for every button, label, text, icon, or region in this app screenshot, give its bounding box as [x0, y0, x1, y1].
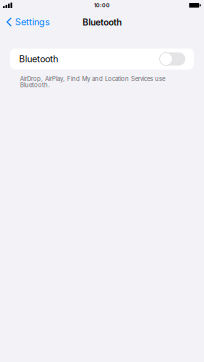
- button[interactable]: Bluetooth: [159, 52, 185, 66]
- staticText: AirDrop, AirPlay, Find My and Location S…: [20, 75, 165, 89]
- staticText: 10:00: [94, 2, 110, 8]
- staticText: Bluetooth: [82, 17, 121, 27]
- staticText: Settings: [15, 16, 50, 27]
- staticText: Bluetooth: [19, 53, 58, 64]
- button[interactable]: Settings: [0, 13, 55, 32]
